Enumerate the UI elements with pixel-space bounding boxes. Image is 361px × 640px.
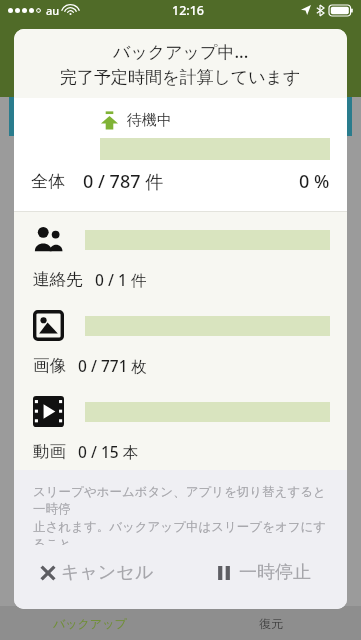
staticText: au <box>46 3 60 18</box>
staticText: 全体 <box>31 171 65 192</box>
staticText: 連絡先 <box>33 269 83 290</box>
staticText: バックアップ <box>53 616 127 631</box>
staticText: 12:16 <box>172 2 205 19</box>
staticText: 0 / 771 枚 <box>78 355 148 376</box>
button[interactable]: バックアップ <box>0 606 180 640</box>
staticText: 復元 <box>259 616 283 631</box>
button[interactable]: Pause <box>180 545 347 599</box>
staticText: 一時停止 <box>239 561 311 584</box>
staticText: 止されます。バックアップ中はスリープをオフにすること <box>33 519 330 545</box>
staticText: スリープやホームボタン、アプリを切り替えすると一時停 <box>33 484 330 516</box>
staticText: 動画 <box>33 441 66 462</box>
staticText: 0 / 787 件 <box>83 169 164 194</box>
other: Pause <box>217 566 231 580</box>
staticText: 0 / 1 件 <box>95 269 147 290</box>
button[interactable]: 復元 <box>180 606 361 640</box>
staticText: バックアップ中... <box>113 40 249 63</box>
other: Cancel <box>40 565 56 581</box>
staticText: 0 / 15 本 <box>78 441 139 462</box>
staticText: 画像 <box>33 355 66 376</box>
staticText: 完了予定時間を計算しています <box>60 67 301 88</box>
staticText: 0 % <box>299 169 330 194</box>
staticText: キャンセル <box>61 561 154 584</box>
button[interactable]: Cancel <box>14 545 180 599</box>
staticText: 待機中 <box>127 111 172 130</box>
